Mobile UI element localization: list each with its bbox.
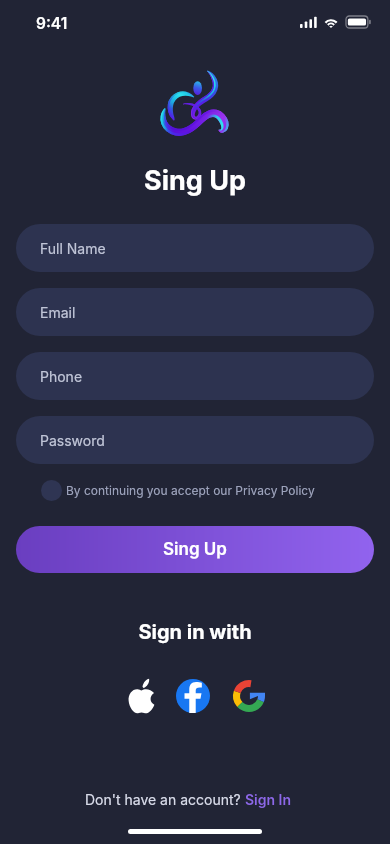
button[interactable]: Full Name <box>16 224 374 272</box>
button[interactable]: Sign In <box>245 791 292 808</box>
staticText: Phone <box>40 368 83 385</box>
staticText: 9:41 <box>36 14 68 33</box>
button[interactable]: Sign in with Apple <box>119 674 163 718</box>
staticText: By continuing you accept our Privacy Pol… <box>66 483 315 498</box>
staticText: Sing Up <box>163 539 227 560</box>
button[interactable]: Sign in with Google <box>227 674 271 718</box>
staticText: Sing Up <box>0 164 390 197</box>
button[interactable]: Sing Up <box>16 526 374 573</box>
button[interactable]: Email <box>16 288 374 336</box>
button[interactable]: Phone <box>16 352 374 400</box>
staticText: Email <box>40 304 76 321</box>
staticText: Full Name <box>40 240 106 257</box>
staticText: Password <box>40 432 105 449</box>
staticText: Don't have an account? <box>85 791 245 808</box>
button[interactable]: Sign in with Facebook <box>171 674 215 718</box>
button[interactable]: By continuing you accept our Privacy Pol… <box>41 480 315 501</box>
staticText: Sign in with <box>0 620 390 644</box>
button[interactable]: Password <box>16 416 374 464</box>
